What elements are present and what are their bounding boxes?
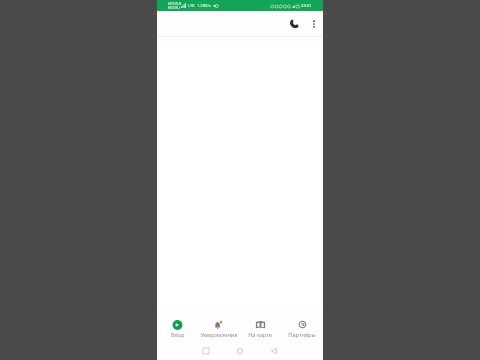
staticText: LTE <box>188 3 195 8</box>
staticText: 1.28K/s <box>197 3 211 8</box>
button[interactable]: Вход <box>157 311 198 341</box>
staticText: Вход <box>171 331 184 339</box>
staticText: MTS RUS <box>168 2 182 6</box>
button[interactable]: Call <box>284 14 303 33</box>
button[interactable]: На карте <box>239 311 281 341</box>
button[interactable]: Партнёры <box>281 311 323 341</box>
staticText: На карте <box>248 331 272 339</box>
button[interactable]: Уведомления <box>198 311 239 341</box>
staticText: 23:51 <box>301 3 312 9</box>
button[interactable]: Home <box>229 341 251 360</box>
button[interactable]: More options <box>304 14 323 33</box>
staticText: Уведомления <box>200 331 238 339</box>
button[interactable]: Recent apps <box>195 341 217 360</box>
button[interactable]: Back <box>263 341 285 360</box>
staticText: Партнёры <box>288 331 316 339</box>
staticText: MTS RU <box>168 6 180 10</box>
